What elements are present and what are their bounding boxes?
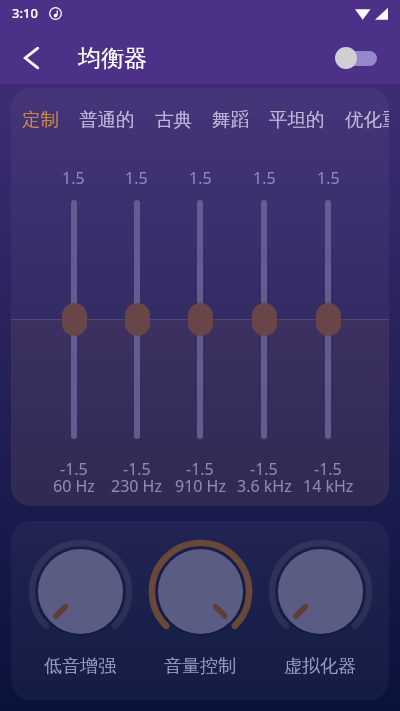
staticText: 均衡器: [78, 44, 147, 73]
button[interactable]: 古典: [155, 108, 192, 131]
button[interactable]: [59, 200, 89, 439]
button[interactable]: 音量控制: [140, 521, 260, 700]
button[interactable]: 低音增强: [20, 521, 140, 700]
button[interactable]: 定制: [22, 108, 59, 131]
staticText: 1.5: [253, 167, 276, 189]
staticText: -1.5: [186, 458, 214, 480]
button[interactable]: [249, 200, 279, 439]
staticText: 1.5: [125, 167, 148, 189]
staticText: -1.5: [60, 458, 88, 480]
staticText: 60 Hz: [53, 475, 95, 497]
button[interactable]: 虚拟化器: [260, 521, 380, 700]
staticText: 普通的: [79, 108, 135, 131]
staticText: -1.5: [250, 458, 278, 480]
button[interactable]: Toggle equalizer: [332, 41, 388, 75]
button[interactable]: 优化重低音: [345, 108, 389, 131]
staticText: 音量控制: [164, 655, 236, 678]
button[interactable]: 舞蹈: [212, 108, 249, 131]
button[interactable]: Back: [10, 37, 52, 79]
staticText: 14 kHz: [303, 475, 354, 497]
staticText: -1.5: [314, 458, 342, 480]
button[interactable]: [185, 200, 215, 439]
staticText: 910 Hz: [175, 475, 226, 497]
staticText: 1.5: [189, 167, 212, 189]
staticText: 1.5: [317, 167, 340, 189]
staticText: 舞蹈: [212, 108, 249, 131]
staticText: 230 Hz: [111, 475, 162, 497]
staticText: -1.5: [123, 458, 151, 480]
staticText: 平坦的: [269, 108, 325, 131]
staticText: 低音增强: [44, 655, 116, 678]
button[interactable]: [122, 200, 152, 439]
staticText: 3.6 kHz: [237, 475, 292, 497]
button[interactable]: [313, 200, 343, 439]
button[interactable]: 平坦的: [269, 108, 325, 131]
staticText: 优化重低音: [345, 108, 389, 131]
staticText: 1.5: [62, 167, 85, 189]
staticText: 古典: [155, 108, 192, 131]
staticText: 定制: [22, 108, 59, 131]
button[interactable]: 普通的: [79, 108, 135, 131]
staticText: 3:10: [12, 4, 38, 22]
staticText: 虚拟化器: [284, 655, 356, 678]
